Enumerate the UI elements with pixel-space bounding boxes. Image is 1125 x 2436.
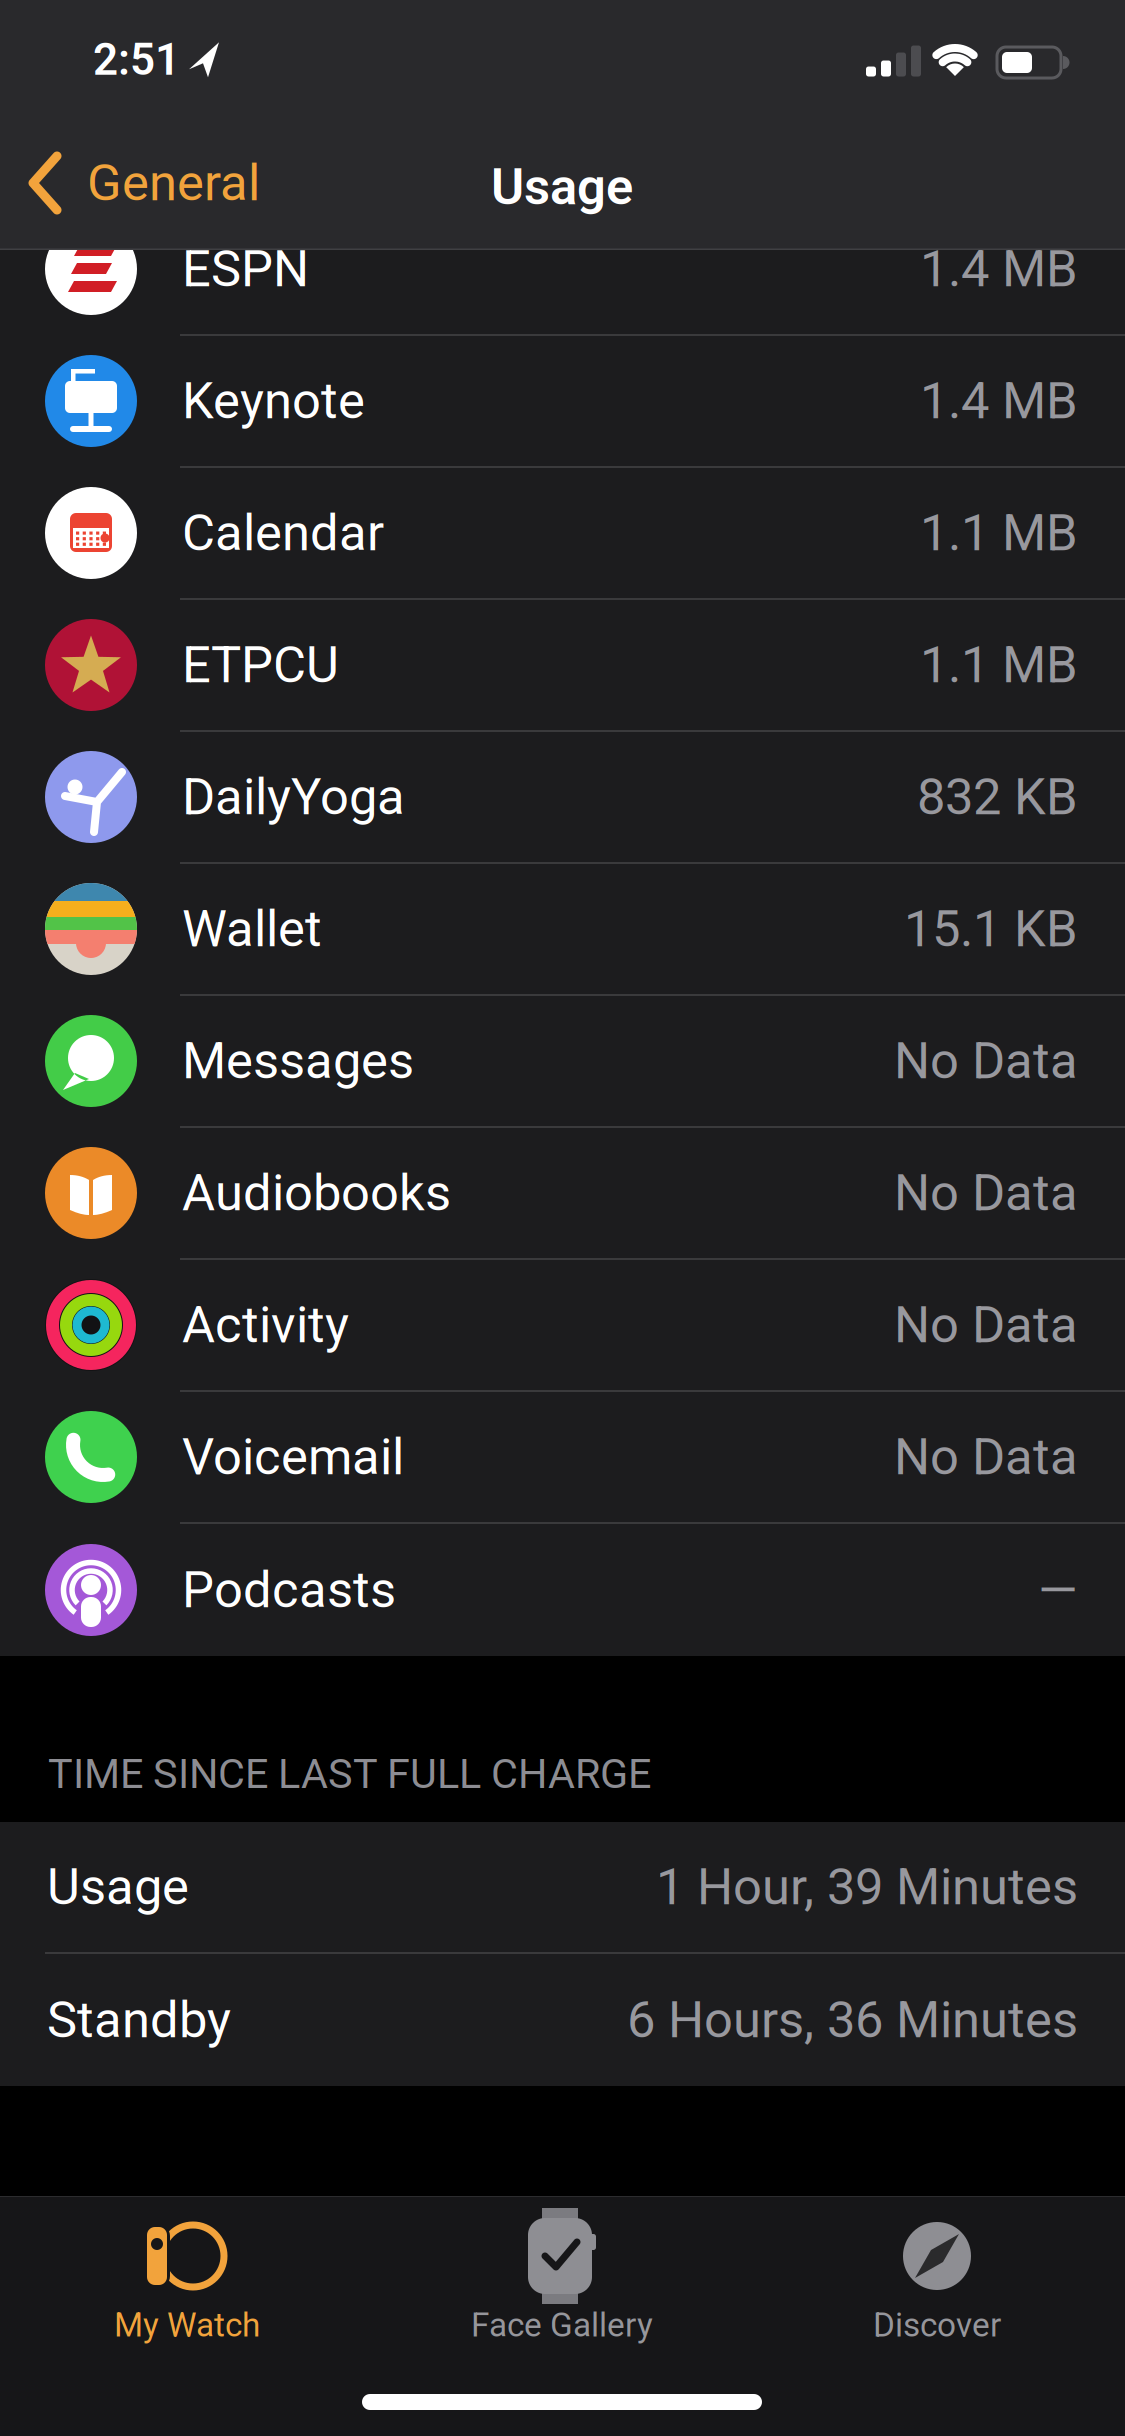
- button[interactable]: Calendar: [0, 468, 1125, 600]
- staticText: Wallet: [182, 899, 322, 959]
- staticText: TIME SINCE LAST FULL CHARGE: [48, 1750, 651, 1798]
- button[interactable]: Standby: [0, 1954, 1125, 2086]
- staticText: 1.1 MB: [920, 635, 1078, 695]
- staticText: General: [87, 153, 260, 213]
- staticText: 2:51: [93, 34, 180, 86]
- staticText: No Data: [894, 1295, 1078, 1355]
- staticText: ETPCU: [182, 635, 339, 695]
- button[interactable]: Face Gallery: [412, 2196, 712, 2366]
- staticText: 1 Hour, 39 Minutes: [656, 1857, 1078, 1917]
- button[interactable]: Keynote: [0, 336, 1125, 468]
- staticText: 1.4 MB: [920, 239, 1078, 299]
- staticText: Standby: [47, 1990, 231, 2050]
- staticText: Usage: [491, 157, 633, 217]
- button[interactable]: Wallet: [0, 864, 1125, 996]
- staticText: Messages: [182, 1031, 414, 1091]
- button[interactable]: My Watch: [37, 2196, 337, 2366]
- staticText: No Data: [894, 1427, 1078, 1487]
- button[interactable]: Usage: [0, 1822, 1125, 1954]
- staticText: Podcasts: [182, 1560, 396, 1620]
- staticText: No Data: [894, 1031, 1078, 1091]
- button[interactable]: Podcasts: [0, 1524, 1125, 1656]
- staticText: Usage: [47, 1857, 189, 1917]
- button[interactable]: Audiobooks: [0, 1128, 1125, 1260]
- staticText: Discover: [873, 2305, 1001, 2345]
- button[interactable]: Voicemail: [0, 1392, 1125, 1524]
- staticText: 1.1 MB: [920, 503, 1078, 563]
- button[interactable]: ETPCU: [0, 600, 1125, 732]
- staticText: 832 KB: [917, 767, 1078, 827]
- button[interactable]: DailyYoga: [0, 732, 1125, 864]
- staticText: 6 Hours, 36 Minutes: [627, 1990, 1078, 2050]
- staticText: Calendar: [182, 503, 384, 563]
- staticText: ESPN: [182, 239, 309, 299]
- button[interactable]: Messages: [0, 996, 1125, 1128]
- staticText: Keynote: [182, 371, 365, 431]
- button[interactable]: Discover: [787, 2196, 1087, 2366]
- staticText: 1.4 MB: [920, 371, 1078, 431]
- staticText: Audiobooks: [182, 1163, 451, 1223]
- button[interactable]: Activity: [0, 1260, 1125, 1392]
- staticText: No Data: [894, 1163, 1078, 1223]
- staticText: Face Gallery: [471, 2305, 653, 2345]
- staticText: Activity: [182, 1295, 349, 1355]
- button[interactable]: ESPN: [0, 204, 1125, 336]
- staticText: —: [1038, 1560, 1078, 1620]
- staticText: Voicemail: [182, 1427, 404, 1487]
- staticText: DailyYoga: [182, 767, 405, 827]
- staticText: 15.1 KB: [904, 899, 1078, 959]
- button[interactable]: General: [28, 151, 260, 215]
- staticText: My Watch: [114, 2305, 260, 2345]
